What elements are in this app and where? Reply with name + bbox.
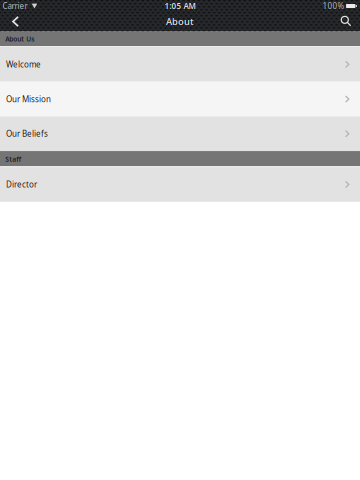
staticText: About Us bbox=[5, 35, 34, 43]
staticText: Welcome bbox=[6, 59, 41, 70]
staticText: 1:05 AM bbox=[164, 1, 195, 11]
staticText: About bbox=[166, 15, 194, 28]
staticText: Director bbox=[6, 179, 37, 190]
staticText: Our Beliefs bbox=[6, 128, 48, 139]
staticText: 100% bbox=[322, 1, 344, 11]
button[interactable]: Our Mission bbox=[0, 82, 360, 116]
staticText: Carrier bbox=[2, 1, 27, 11]
staticText: Staff bbox=[5, 155, 21, 164]
button[interactable]: Director bbox=[0, 167, 360, 202]
button[interactable]: Our Beliefs bbox=[0, 116, 360, 151]
button[interactable]: Welcome bbox=[0, 47, 360, 82]
button[interactable]: Back bbox=[0, 12, 40, 31]
button[interactable]: Search bbox=[320, 12, 360, 31]
staticText: Our Mission bbox=[6, 94, 51, 104]
